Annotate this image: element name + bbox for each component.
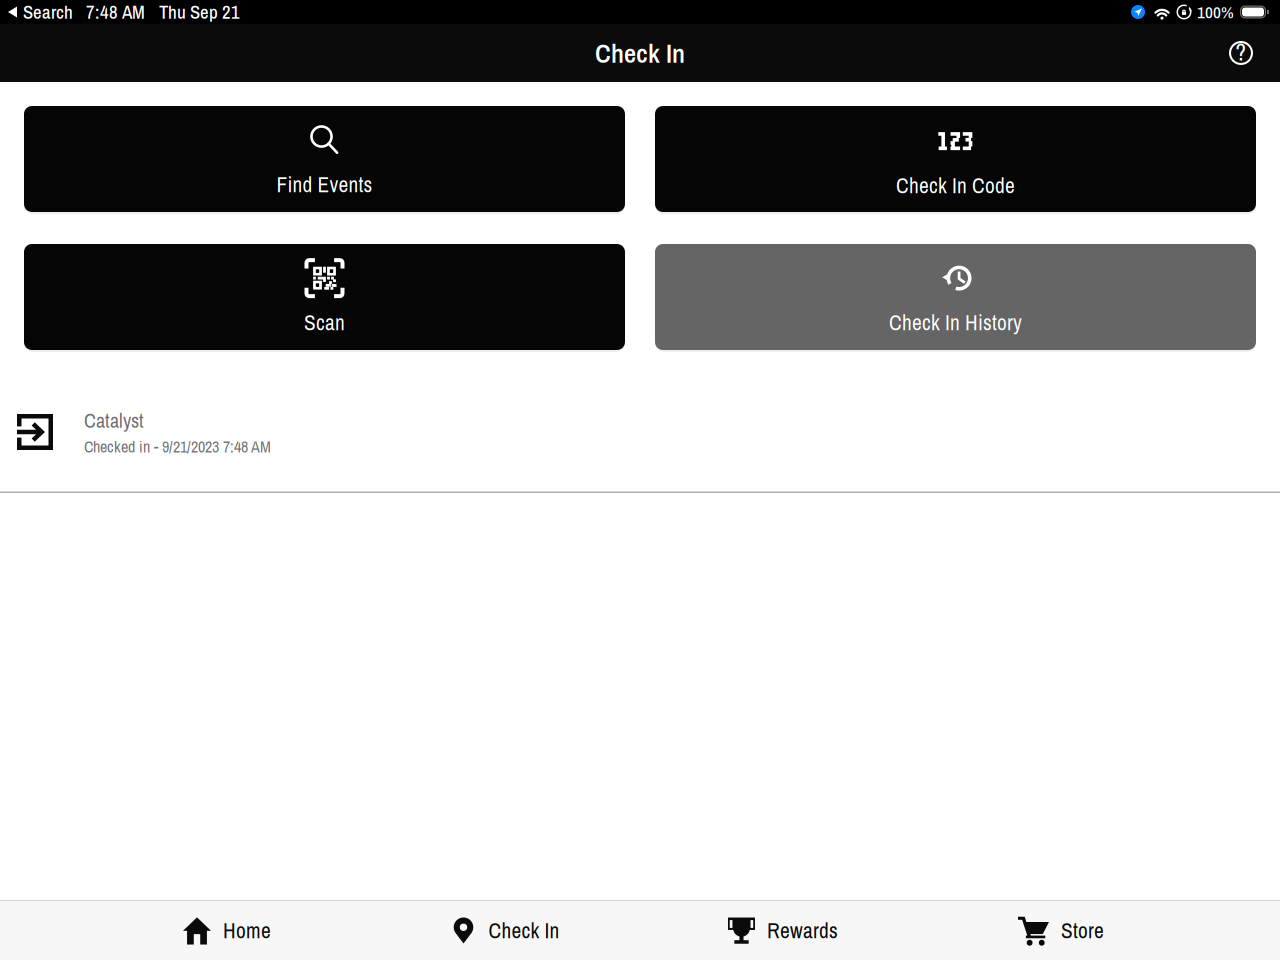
button[interactable]: Rewards [644, 901, 922, 960]
staticText: 100% [1197, 0, 1234, 24]
staticText: Checked in - 9/21/2023 7:48 AM [84, 436, 271, 457]
staticText: Check In History [889, 308, 1022, 337]
staticText: Catalyst [84, 407, 144, 434]
staticText: Check In [488, 916, 559, 945]
staticText: 7:48 AM [86, 0, 145, 24]
staticText: Check In Code [896, 171, 1015, 200]
button[interactable]: Catalyst [0, 402, 1280, 491]
staticText: Check In [595, 35, 685, 71]
staticText: Search [23, 0, 73, 24]
button[interactable]: Scan [24, 244, 625, 352]
staticText: Store [1061, 916, 1104, 945]
button[interactable]: Check In [366, 901, 644, 960]
staticText: ? [1235, 37, 1246, 68]
staticText: Find Events [276, 170, 372, 199]
staticText: Thu Sep 21 [159, 0, 240, 24]
button[interactable]: Store [922, 901, 1200, 960]
staticText: Scan [304, 308, 345, 337]
button[interactable]: Find Events [24, 106, 625, 214]
button[interactable]: Check In Code [655, 106, 1256, 214]
staticText: Rewards [767, 916, 838, 945]
button[interactable]: Check In History [655, 244, 1256, 352]
button[interactable]: Home [88, 901, 366, 960]
button[interactable]: Help [1219, 31, 1263, 75]
staticText: Home [223, 916, 271, 945]
